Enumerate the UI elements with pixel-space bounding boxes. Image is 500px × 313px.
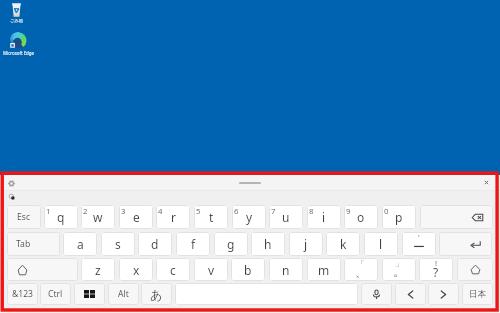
staticText: 6 bbox=[234, 206, 239, 217]
button[interactable]: ー bbox=[402, 232, 436, 256]
button[interactable]: y bbox=[232, 205, 266, 229]
button[interactable]: n bbox=[269, 258, 303, 281]
staticText: d bbox=[151, 236, 159, 252]
button[interactable]: Windows bbox=[74, 283, 105, 305]
staticText: あ bbox=[150, 287, 163, 302]
staticText: Esc bbox=[17, 211, 31, 223]
button[interactable]: 、 bbox=[344, 258, 378, 281]
staticText: &123 bbox=[12, 288, 34, 300]
button[interactable]: j bbox=[289, 232, 323, 256]
staticText: l bbox=[379, 236, 383, 252]
button[interactable]: d bbox=[138, 232, 172, 256]
staticText: 2 bbox=[83, 206, 88, 217]
staticText: o bbox=[357, 209, 365, 225]
staticText: Tab bbox=[16, 238, 31, 250]
staticText: z bbox=[95, 262, 101, 278]
button[interactable]: Microsoft Edge bbox=[0, 32, 36, 56]
button[interactable]: Settings bbox=[8, 180, 15, 187]
button[interactable]: q bbox=[44, 205, 78, 229]
staticText: 「 bbox=[357, 258, 365, 268]
staticText: ' bbox=[418, 232, 420, 243]
staticText: q bbox=[57, 209, 65, 225]
button[interactable]: Voice typing bbox=[361, 283, 392, 305]
staticText: n bbox=[282, 262, 290, 278]
staticText: 9 bbox=[346, 206, 351, 217]
staticText: 4 bbox=[158, 206, 163, 217]
button[interactable]: Shift bbox=[7, 258, 78, 281]
staticText: y bbox=[246, 209, 253, 225]
staticText: k bbox=[340, 236, 347, 252]
staticText: 5 bbox=[196, 206, 201, 217]
staticText: v bbox=[208, 262, 215, 278]
staticText: j bbox=[304, 236, 308, 252]
button[interactable]: m bbox=[307, 258, 341, 281]
button[interactable]: r bbox=[156, 205, 190, 229]
button[interactable]: 。 bbox=[382, 258, 416, 281]
button[interactable]: Tab bbox=[7, 232, 60, 256]
button[interactable]: o bbox=[344, 205, 378, 229]
button[interactable]: Space bbox=[175, 283, 358, 305]
staticText: h bbox=[264, 236, 272, 252]
staticText: ? bbox=[433, 264, 439, 280]
button[interactable]: Enter bbox=[439, 232, 492, 256]
button[interactable]: 日本 bbox=[462, 283, 493, 305]
staticText: t bbox=[209, 209, 214, 225]
staticText: g bbox=[227, 236, 235, 252]
staticText: 0 bbox=[384, 206, 389, 217]
button[interactable]: h bbox=[251, 232, 285, 256]
staticText: ごみ箱 bbox=[10, 18, 23, 23]
staticText: Ctrl bbox=[48, 288, 63, 300]
button[interactable]: x bbox=[119, 258, 153, 281]
staticText: b bbox=[244, 262, 252, 278]
button[interactable]: v bbox=[194, 258, 228, 281]
button[interactable]: Move keyboard bbox=[239, 182, 261, 184]
button[interactable]: Left bbox=[395, 283, 426, 305]
button[interactable]: b bbox=[231, 258, 265, 281]
button[interactable]: c bbox=[156, 258, 190, 281]
button[interactable]: Ctrl bbox=[40, 283, 71, 305]
staticText: u bbox=[282, 209, 290, 225]
button[interactable]: g bbox=[214, 232, 248, 256]
staticText: w bbox=[93, 209, 103, 225]
staticText: 8 bbox=[309, 206, 314, 217]
staticText: r bbox=[171, 209, 176, 225]
button[interactable]: &123 bbox=[7, 283, 38, 305]
staticText: a bbox=[77, 236, 84, 252]
button[interactable]: f bbox=[176, 232, 210, 256]
button[interactable]: i bbox=[307, 205, 341, 229]
button[interactable]: Recycle Bin bbox=[1, 3, 31, 23]
button[interactable]: Input mode bbox=[9, 194, 15, 200]
button[interactable]: w bbox=[81, 205, 115, 229]
button[interactable]: t bbox=[194, 205, 228, 229]
staticText: p bbox=[395, 209, 403, 225]
staticText: s bbox=[115, 236, 121, 252]
staticText: 3 bbox=[121, 206, 126, 217]
staticText: 7 bbox=[271, 206, 276, 217]
staticText: 1 bbox=[46, 206, 51, 217]
staticText: ー bbox=[413, 239, 425, 254]
button[interactable]: z bbox=[81, 258, 115, 281]
button[interactable]: Backspace bbox=[420, 205, 493, 229]
button[interactable]: Right bbox=[428, 283, 459, 305]
staticText: 」 bbox=[395, 258, 403, 268]
button[interactable]: ? bbox=[419, 258, 453, 281]
staticText: c bbox=[170, 262, 176, 278]
button[interactable]: a bbox=[63, 232, 97, 256]
button[interactable]: Alt bbox=[108, 283, 139, 305]
button[interactable]: u bbox=[269, 205, 303, 229]
staticText: f bbox=[191, 236, 196, 252]
button[interactable]: e bbox=[119, 205, 153, 229]
button[interactable]: l bbox=[364, 232, 398, 256]
button[interactable]: あ bbox=[141, 283, 172, 305]
button[interactable]: Close bbox=[483, 179, 490, 186]
button[interactable]: Shift bbox=[457, 258, 493, 281]
staticText: e bbox=[133, 209, 140, 225]
button[interactable]: p bbox=[382, 205, 416, 229]
staticText: i bbox=[322, 209, 326, 225]
staticText: x bbox=[133, 262, 140, 278]
staticText: Alt bbox=[118, 288, 129, 300]
button[interactable]: k bbox=[326, 232, 360, 256]
button[interactable]: s bbox=[101, 232, 135, 256]
button[interactable]: Esc bbox=[7, 205, 41, 229]
staticText: ! bbox=[435, 258, 438, 269]
